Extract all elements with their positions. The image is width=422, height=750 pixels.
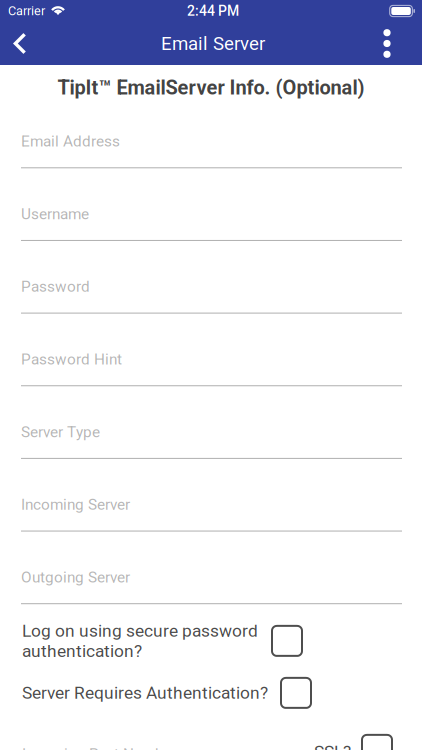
staticText: Outgoing Server bbox=[21, 568, 130, 586]
button[interactable]: Server Type bbox=[21, 386, 402, 459]
button[interactable]: Password Hint bbox=[21, 314, 402, 386]
button[interactable]: Username bbox=[21, 168, 402, 241]
staticText: TipIt™ EmailServer Info. (Optional) bbox=[57, 76, 364, 99]
button[interactable]: More options bbox=[365, 22, 409, 65]
button[interactable]: Email Address bbox=[21, 96, 402, 168]
button[interactable]: Log on using secure password authenticat… bbox=[0, 615, 422, 667]
staticText: Incoming Port Number bbox=[22, 745, 177, 750]
staticText: Carrier bbox=[8, 4, 45, 18]
button[interactable]: Outgoing Server bbox=[21, 531, 402, 604]
button[interactable]: Server Requires Authentication? bbox=[0, 667, 422, 719]
staticText: Incoming Server bbox=[21, 496, 130, 514]
button[interactable]: Password bbox=[21, 241, 402, 314]
staticText: Password bbox=[21, 278, 90, 296]
staticText: Log on using secure password authenticat… bbox=[22, 621, 258, 661]
staticText: SSL? bbox=[314, 742, 351, 750]
staticText: Username bbox=[21, 205, 89, 223]
staticText: 2:44 PM bbox=[187, 3, 239, 19]
button[interactable]: Back bbox=[0, 22, 40, 65]
staticText: Password Hint bbox=[21, 350, 122, 368]
staticText: Email Server bbox=[161, 33, 265, 54]
button[interactable]: Incoming Port Number bbox=[0, 719, 422, 750]
staticText: Server Requires Authentication? bbox=[22, 683, 268, 703]
staticText: Server Type bbox=[21, 423, 100, 441]
button[interactable]: Incoming Server bbox=[21, 459, 402, 532]
staticText: Email Address bbox=[21, 132, 120, 150]
